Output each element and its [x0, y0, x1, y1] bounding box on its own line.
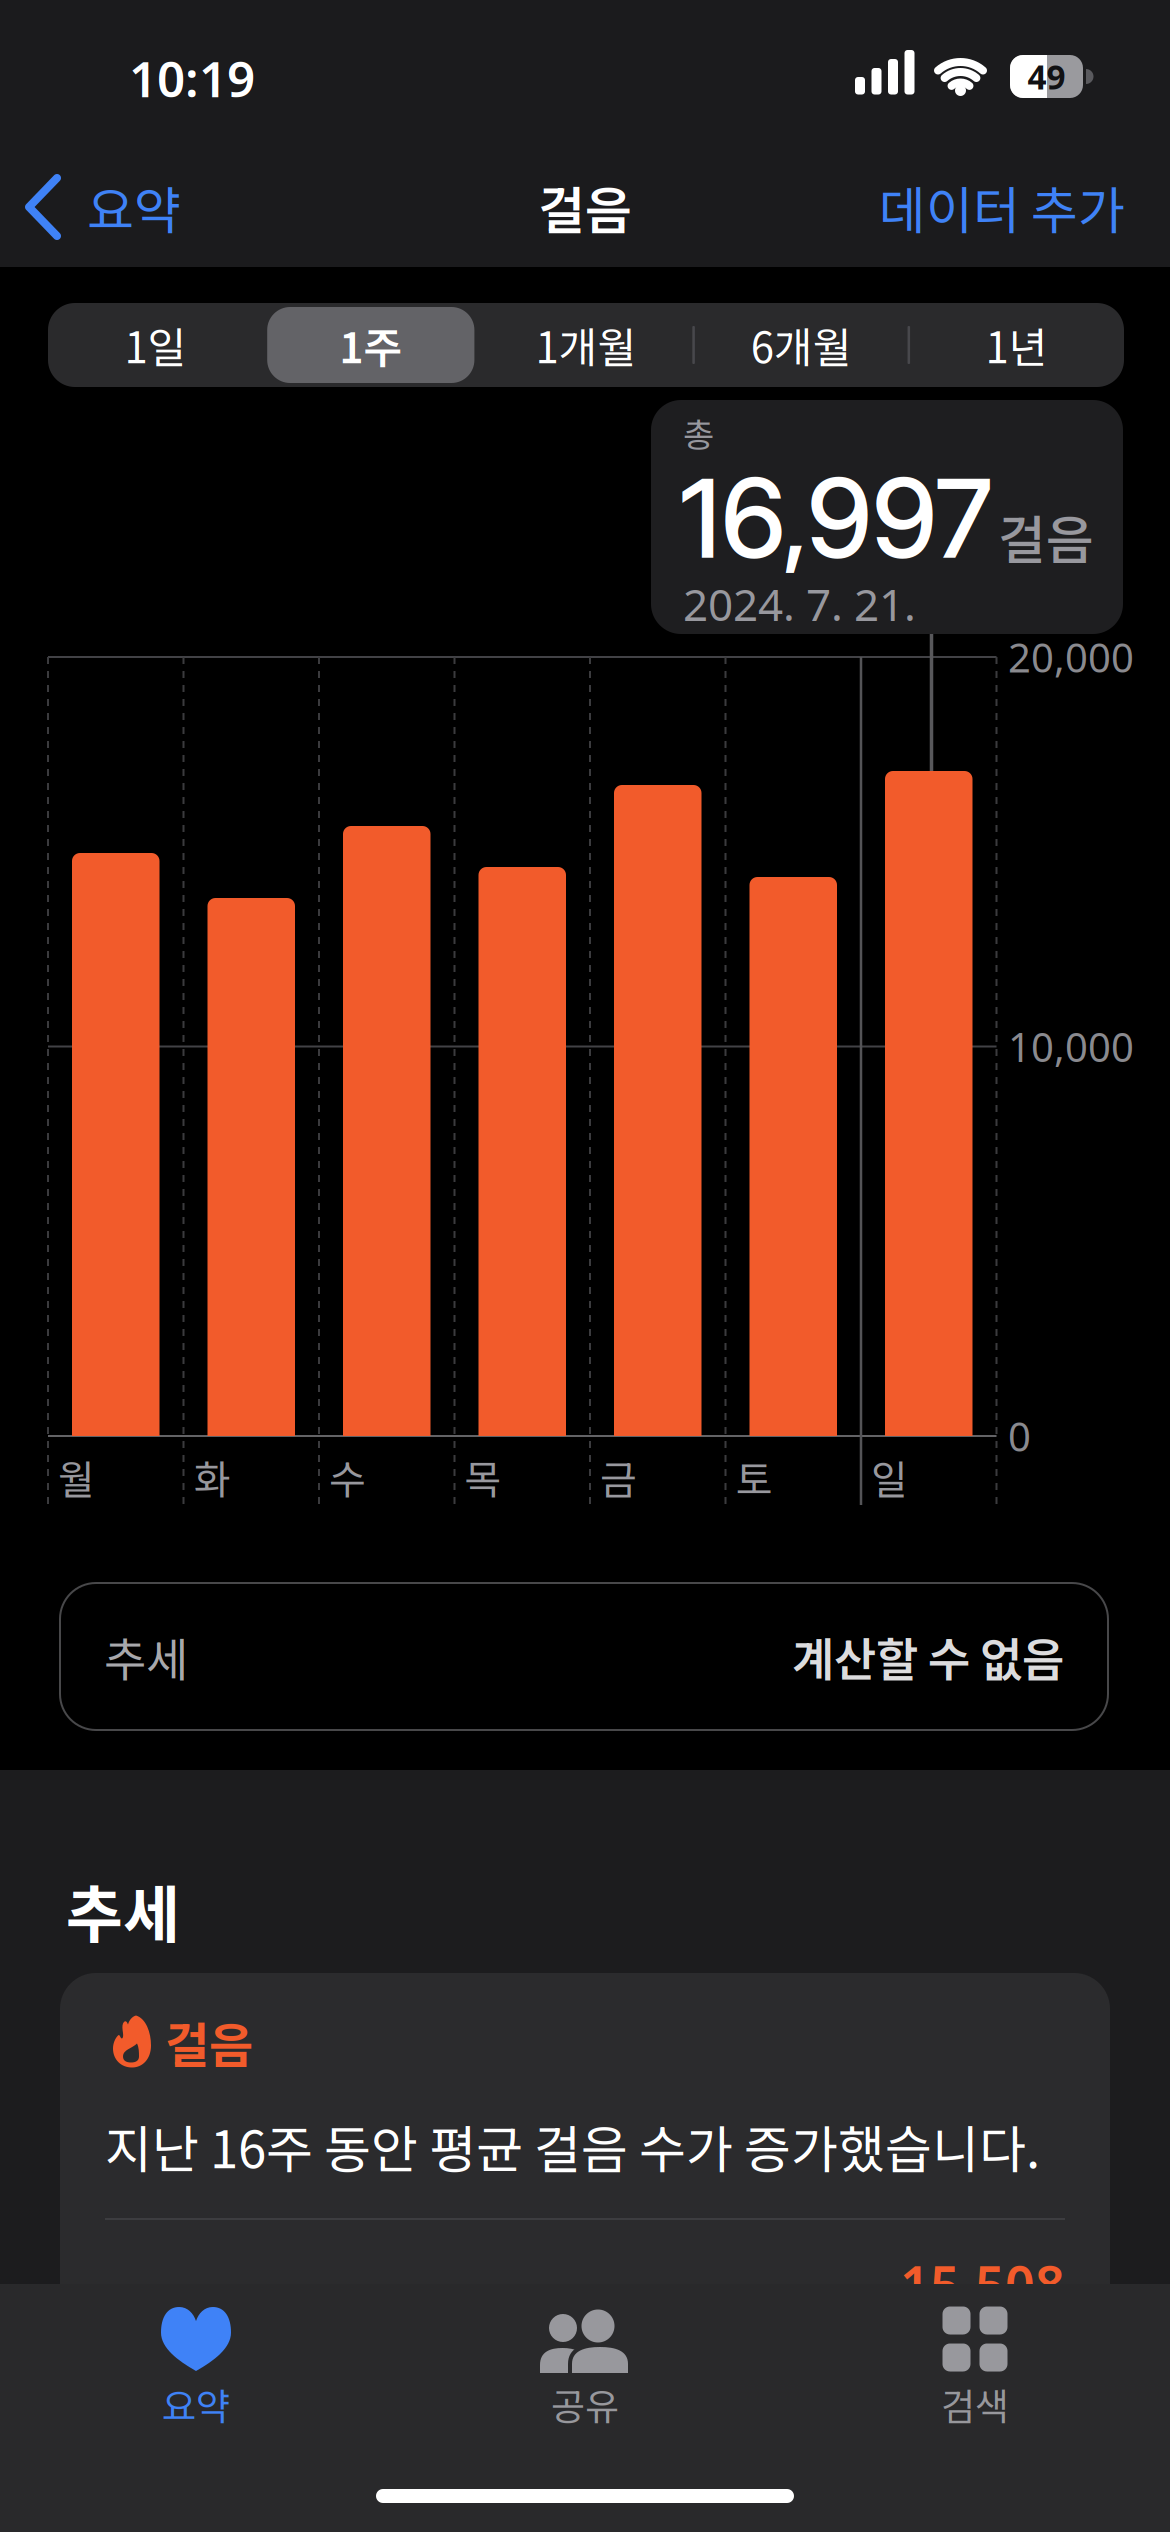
button[interactable]: 1개월: [478, 303, 694, 387]
button[interactable]: 공유: [455, 2294, 715, 2444]
staticText: 16,997: [680, 452, 992, 584]
staticText: 걸음: [165, 2007, 253, 2077]
staticText: 목: [464, 1448, 501, 1506]
staticText: 1년: [985, 315, 1047, 375]
staticText: 10:19: [129, 45, 255, 111]
staticText: 1주: [339, 315, 402, 375]
staticText: 월: [58, 1448, 95, 1506]
staticText: 49: [1027, 54, 1065, 99]
button[interactable]: 1일: [48, 303, 263, 387]
staticText: 1개월: [535, 315, 636, 375]
staticText: 요약: [87, 170, 181, 244]
staticText: 1일: [125, 315, 187, 375]
button[interactable]: 추세: [60, 1583, 1108, 1730]
staticText: 요약: [162, 2377, 230, 2431]
staticText: 화: [193, 1448, 230, 1506]
staticText: 추세: [104, 1623, 188, 1690]
button[interactable]: 걸음: [60, 1973, 1110, 2330]
staticText: 걸음: [538, 170, 632, 244]
staticText: 수: [329, 1448, 366, 1506]
button[interactable]: 요약: [66, 2294, 326, 2444]
button[interactable]: 데이터 추가: [625, 170, 1125, 244]
staticText: 일: [871, 1448, 908, 1506]
staticText: 6개월: [751, 315, 852, 375]
button[interactable]: 1주: [263, 303, 478, 387]
staticText: 0: [1008, 1409, 1031, 1462]
button[interactable]: Back: [25, 170, 181, 244]
staticText: 2024. 7. 21.: [683, 575, 916, 633]
staticText: 토: [735, 1448, 772, 1506]
staticText: 15,508: [900, 2249, 1065, 2319]
staticText: 10,000: [1008, 1020, 1134, 1073]
staticText: 공유: [551, 2377, 619, 2431]
staticText: 지난 16주 동안 평균 걸음 수가 증가했습니다.: [105, 2109, 1040, 2183]
staticText: 추세: [66, 1865, 180, 1955]
staticText: 20,000: [1008, 630, 1134, 683]
staticText: 걸음: [998, 499, 1094, 574]
button[interactable]: 검색: [845, 2294, 1105, 2444]
staticText: 데이터 추가: [879, 170, 1125, 244]
staticText: 검색: [941, 2377, 1009, 2431]
button[interactable]: 1년: [909, 303, 1124, 387]
staticText: 계산할 수 없음: [792, 1623, 1064, 1690]
staticText: 총: [683, 408, 714, 458]
staticText: 금: [600, 1448, 637, 1506]
button[interactable]: 6개월: [694, 303, 909, 387]
